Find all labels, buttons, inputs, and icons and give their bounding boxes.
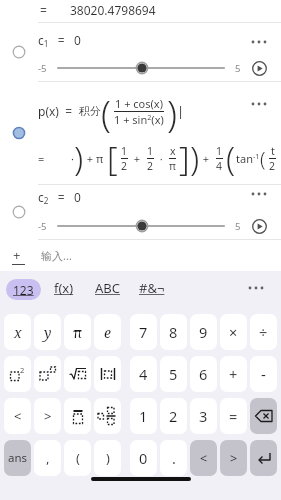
staticText: 4 bbox=[139, 364, 148, 384]
staticText: , bbox=[46, 449, 50, 467]
button[interactable]: < bbox=[4, 398, 31, 434]
button[interactable]: + bbox=[220, 356, 247, 392]
staticText: ) bbox=[167, 89, 177, 133]
button[interactable] bbox=[12, 45, 26, 59]
staticText: 8 bbox=[169, 322, 178, 342]
button[interactable] bbox=[250, 96, 268, 112]
button[interactable]: x bbox=[4, 314, 31, 350]
button[interactable]: c2 = 0 bbox=[0, 185, 281, 239]
button[interactable] bbox=[34, 356, 61, 392]
button[interactable] bbox=[247, 280, 265, 296]
button[interactable]: , bbox=[34, 440, 61, 476]
staticText: x bbox=[170, 144, 176, 158]
button[interactable]: > bbox=[34, 398, 61, 434]
staticText: · bbox=[71, 151, 74, 166]
button[interactable] bbox=[12, 126, 26, 140]
staticText: x bbox=[14, 323, 22, 342]
button[interactable]: p(x) = bbox=[0, 82, 281, 184]
button[interactable]: 4 bbox=[130, 356, 157, 392]
staticText: [ bbox=[107, 136, 118, 180]
staticText: = bbox=[40, 2, 47, 18]
staticText: f(x) bbox=[54, 279, 74, 297]
button[interactable]: 2 bbox=[4, 356, 31, 392]
staticText: < bbox=[14, 407, 22, 425]
button[interactable] bbox=[64, 398, 91, 434]
button[interactable]: ( bbox=[64, 440, 91, 476]
staticText: 1 bbox=[139, 406, 148, 426]
button[interactable]: y bbox=[34, 314, 61, 350]
staticText: · bbox=[157, 151, 166, 166]
staticText: ABC bbox=[95, 279, 120, 297]
button[interactable]: < bbox=[190, 440, 217, 476]
button[interactable]: f(x) bbox=[54, 279, 74, 297]
staticText: 0 bbox=[139, 448, 148, 468]
staticText: 1 bbox=[147, 144, 154, 158]
button[interactable]: 1 bbox=[130, 398, 157, 434]
staticText: π bbox=[169, 159, 176, 173]
button[interactable] bbox=[56, 60, 228, 76]
button[interactable]: e bbox=[94, 314, 121, 350]
button[interactable] bbox=[250, 186, 268, 202]
staticText: = bbox=[38, 151, 45, 166]
button[interactable]: > bbox=[220, 440, 247, 476]
button[interactable]: × bbox=[220, 314, 247, 350]
button[interactable]: . bbox=[160, 440, 187, 476]
button[interactable] bbox=[56, 218, 228, 234]
button[interactable]: 2 bbox=[160, 398, 187, 434]
staticText: c2 = 0 bbox=[38, 189, 81, 206]
staticText: 输入... bbox=[41, 248, 72, 263]
button[interactable] bbox=[250, 398, 277, 434]
button[interactable]: 3 bbox=[190, 398, 217, 434]
staticText: t bbox=[271, 144, 275, 158]
button[interactable]: ans bbox=[4, 440, 31, 476]
staticText: ( bbox=[260, 145, 266, 172]
staticText: + π bbox=[84, 151, 107, 166]
staticText: 5 bbox=[235, 220, 241, 233]
button[interactable]: #&¬ bbox=[139, 279, 165, 297]
button[interactable]: 0 bbox=[130, 440, 157, 476]
staticText: 38020.4798694 bbox=[70, 2, 156, 18]
button[interactable] bbox=[250, 34, 268, 50]
staticText: - bbox=[261, 364, 266, 384]
staticText: 1 bbox=[121, 144, 128, 158]
button[interactable]: ABC bbox=[95, 279, 120, 297]
button[interactable]: 9 bbox=[190, 314, 217, 350]
button[interactable]: - bbox=[250, 356, 277, 392]
button[interactable]: = bbox=[220, 398, 247, 434]
button[interactable]: 6 bbox=[190, 356, 217, 392]
button[interactable] bbox=[94, 398, 121, 434]
button[interactable]: ) bbox=[94, 440, 121, 476]
staticText: c1 = 0 bbox=[38, 32, 81, 49]
staticText: + bbox=[200, 151, 213, 166]
staticText: ] bbox=[179, 136, 190, 180]
staticText: -5 bbox=[38, 220, 47, 233]
button[interactable]: 123 bbox=[6, 279, 41, 300]
staticText: 1 + sin2(x) bbox=[114, 112, 164, 127]
button[interactable]: 5 bbox=[160, 356, 187, 392]
staticText: e bbox=[104, 323, 111, 342]
button[interactable] bbox=[250, 440, 277, 476]
staticText: #&¬ bbox=[139, 279, 165, 297]
staticText: ) bbox=[74, 136, 84, 180]
button[interactable] bbox=[64, 356, 91, 392]
button[interactable]: + bbox=[0, 240, 281, 271]
button[interactable]: 7 bbox=[130, 314, 157, 350]
button[interactable] bbox=[252, 219, 267, 234]
staticText: ( bbox=[101, 89, 111, 133]
staticText: 3 bbox=[199, 406, 208, 426]
button[interactable]: ÷ bbox=[250, 314, 277, 350]
button[interactable] bbox=[12, 205, 26, 219]
staticText: 4 bbox=[216, 159, 223, 173]
staticText: ( bbox=[226, 136, 236, 180]
button[interactable] bbox=[94, 356, 121, 392]
button[interactable]: π bbox=[64, 314, 91, 350]
button[interactable] bbox=[252, 61, 267, 76]
staticText: 2 bbox=[169, 406, 178, 426]
staticText: 7 bbox=[139, 322, 148, 342]
staticText: 2 bbox=[121, 159, 128, 173]
button[interactable]: 8 bbox=[160, 314, 187, 350]
staticText: + bbox=[13, 246, 21, 264]
staticText: -5 bbox=[38, 62, 47, 75]
button[interactable]: c1 = 0 bbox=[0, 23, 281, 81]
staticText: = bbox=[229, 406, 238, 426]
